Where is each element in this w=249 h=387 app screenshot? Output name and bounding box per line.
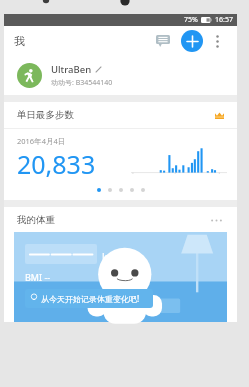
button[interactable]: 我的体重: [4, 207, 237, 232]
button[interactable]: 单日最多步数: [4, 102, 237, 200]
button[interactable]: Messages: [151, 29, 175, 53]
staticText: kg: [102, 250, 114, 264]
button[interactable]: More options: [207, 31, 227, 51]
button[interactable]: kg: [14, 232, 227, 322]
button[interactable]: UltraBen: [4, 55, 237, 95]
staticText: 从今天开始记录体重变化吧!: [41, 293, 140, 304]
staticText: 75%: [184, 15, 198, 25]
staticText: 2016年4月4日: [17, 136, 66, 146]
staticText: 单日最多步数: [17, 109, 74, 121]
button[interactable]: Add: [181, 30, 203, 52]
staticText: 动动号: B34544140: [51, 78, 113, 88]
button[interactable]: Weight options: [208, 212, 224, 228]
staticText: 我: [14, 34, 25, 48]
staticText: 16:57: [215, 15, 233, 25]
staticText: 我的体重: [17, 214, 55, 226]
staticText: 20,833: [17, 147, 96, 181]
staticText: UltraBen: [51, 63, 92, 76]
staticText: BMI --: [25, 271, 51, 283]
button[interactable]: 从今天开始记录体重变化吧!: [25, 289, 153, 308]
